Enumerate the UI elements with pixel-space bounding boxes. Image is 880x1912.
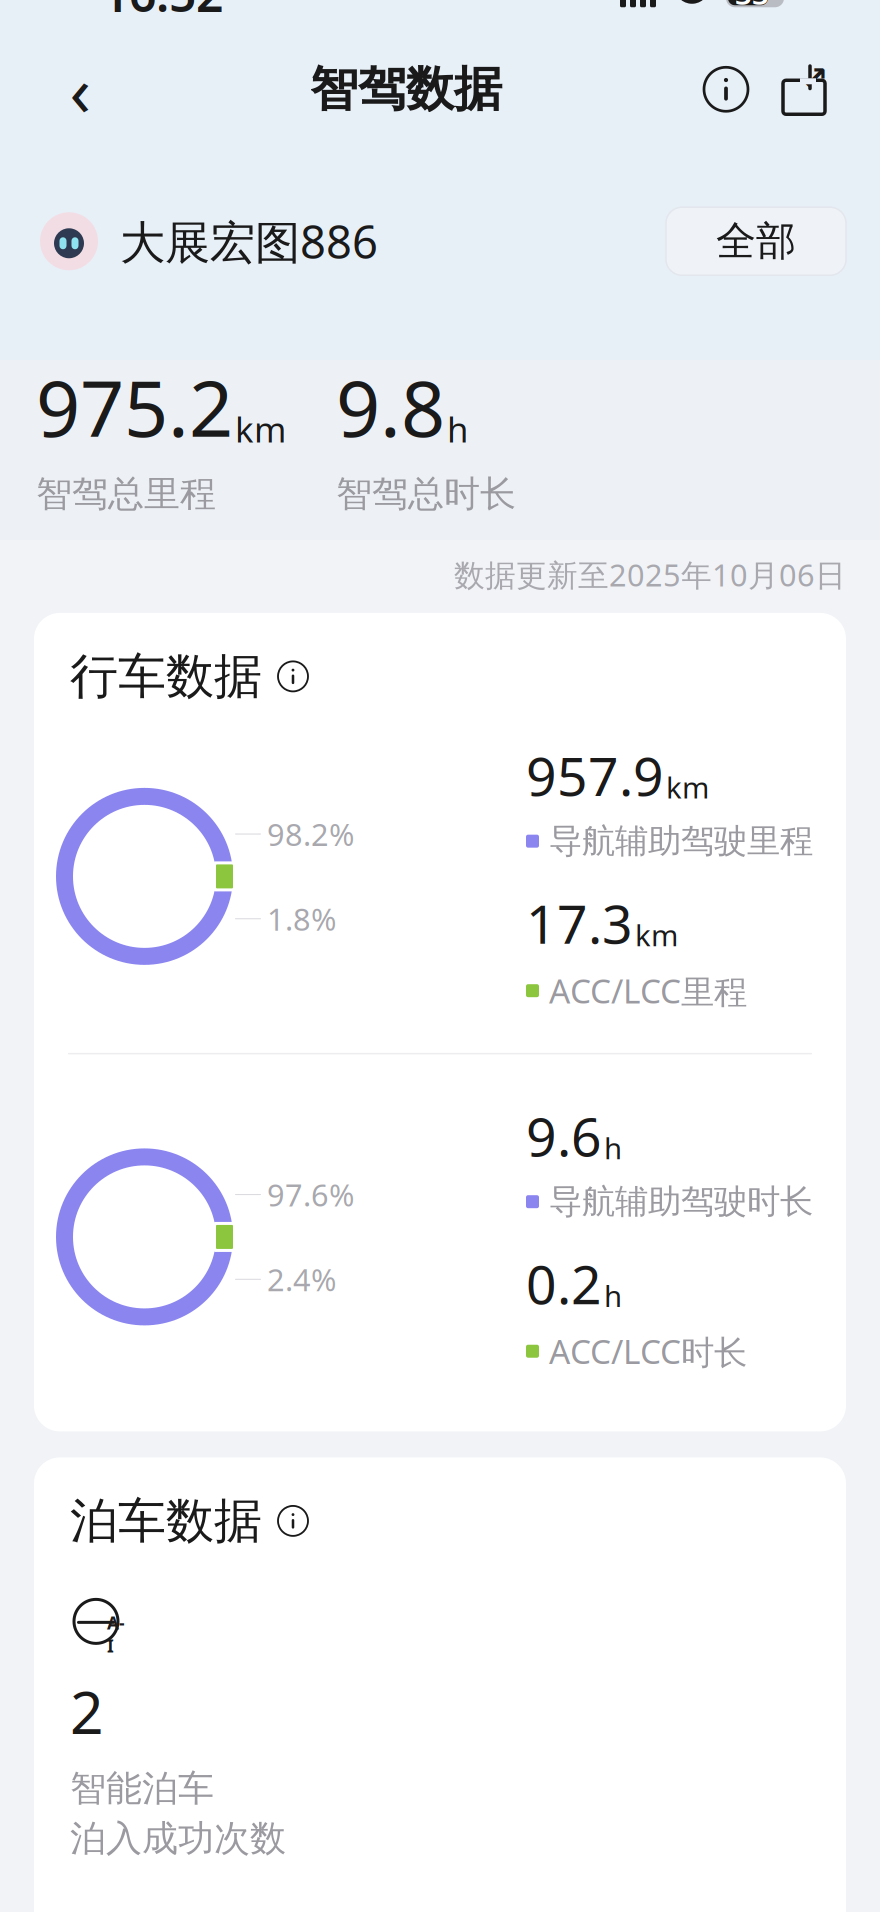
staticText: 导航辅助驾驶里程 xyxy=(549,821,813,862)
staticText: 16:52 xyxy=(102,0,223,25)
staticText: 17.3 xyxy=(526,888,633,958)
staticText: 98.2% xyxy=(267,814,354,854)
staticText: h xyxy=(604,1276,622,1315)
staticText: 大展宏图886 xyxy=(120,211,378,271)
staticText: 97.6% xyxy=(267,1174,354,1215)
staticText: 导航辅助驾驶时长 xyxy=(549,1181,813,1222)
staticText: 1.8% xyxy=(267,898,336,939)
staticText: 智驾总里程 xyxy=(36,472,216,516)
staticText: 9.8 xyxy=(336,355,445,458)
staticText: h xyxy=(447,406,468,452)
staticText: km xyxy=(635,915,678,954)
button[interactable]: About parking data xyxy=(274,1502,312,1540)
staticText: 0.2 xyxy=(526,1248,602,1319)
staticText: AI xyxy=(107,1611,125,1657)
button[interactable]: Back xyxy=(42,51,118,127)
staticText: 2.4% xyxy=(267,1259,336,1300)
staticText: ↗ xyxy=(801,60,828,96)
staticText: ‹ xyxy=(69,43,90,135)
staticText: 智驾总时长 xyxy=(336,472,516,516)
staticText: 33 xyxy=(735,0,769,13)
staticText: 全部 xyxy=(716,217,796,266)
staticText: 数据更新至2025年10月06日 xyxy=(454,554,846,595)
staticText: 智能泊车 xyxy=(70,1766,214,1810)
staticText: 泊车数据 xyxy=(70,1491,262,1550)
staticText: h xyxy=(604,1128,622,1167)
staticText: 957.9 xyxy=(526,740,664,811)
staticText: km xyxy=(666,768,709,807)
button[interactable]: About driving data xyxy=(274,657,312,695)
button[interactable]: Share xyxy=(772,57,836,121)
staticText: 975.2 xyxy=(36,355,233,458)
staticText: ACC/LCC里程 xyxy=(549,968,747,1013)
staticText: 泊入成功次数 xyxy=(70,1816,286,1861)
staticText: ACC/LCC时长 xyxy=(549,1329,747,1373)
staticText: 行车数据 xyxy=(70,647,262,706)
staticText: 2 xyxy=(70,1672,104,1750)
staticText: 智驾数据 xyxy=(310,60,502,119)
staticText: 9.6 xyxy=(526,1100,602,1171)
staticText: km xyxy=(235,406,286,452)
button[interactable]: Information xyxy=(694,57,758,121)
button[interactable]: 全部 xyxy=(666,207,846,275)
